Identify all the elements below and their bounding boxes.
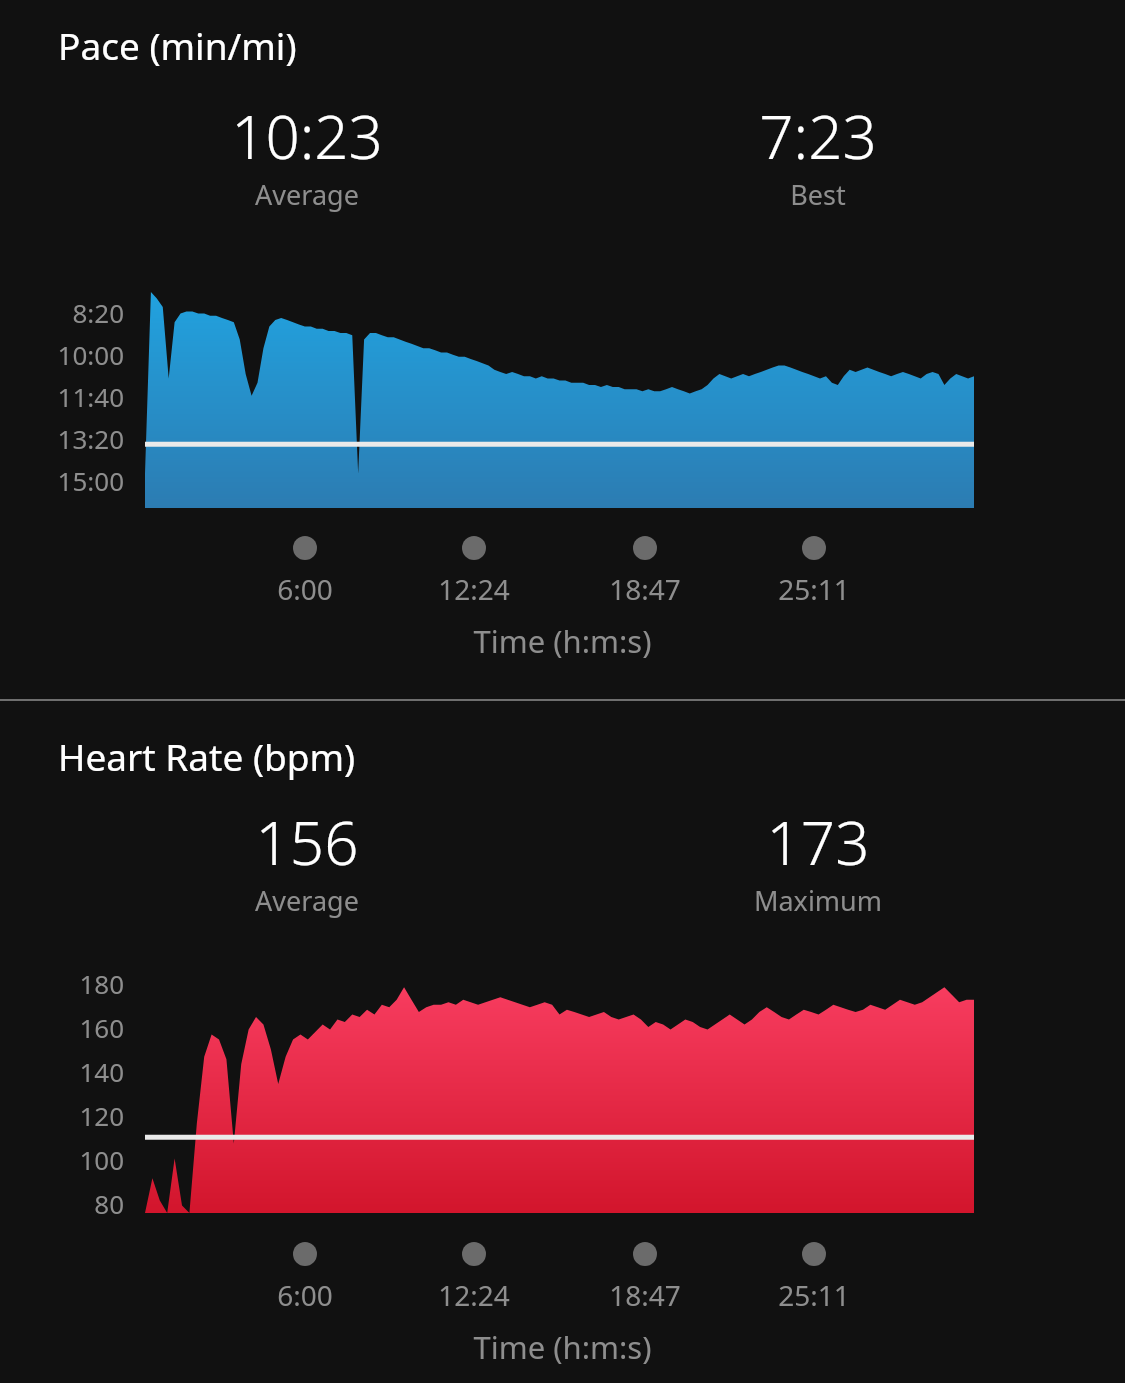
staticText: 15:00 [0, 463, 124, 498]
staticText: 100 [0, 1142, 124, 1177]
staticText: 120 [0, 1098, 124, 1133]
staticText: 12:24 [374, 1276, 574, 1314]
button[interactable]: Heart Rate (bpm) [0, 701, 1125, 1383]
staticText: 25:11 [714, 570, 914, 608]
staticText: 6:00 [205, 570, 405, 608]
staticText: 11:40 [0, 379, 124, 414]
staticText: 140 [0, 1054, 124, 1089]
staticText: 18:47 [545, 1276, 745, 1314]
staticText: Pace (min/mi) [58, 20, 297, 70]
staticText: 13:20 [0, 421, 124, 456]
staticText: 10:00 [0, 337, 124, 372]
staticText: 7:23 [628, 95, 1008, 177]
staticText: 173 [628, 801, 1008, 883]
staticText: 8:20 [0, 295, 124, 330]
staticText: Time (h:m:s) [0, 620, 1125, 662]
staticText: 25:11 [714, 1276, 914, 1314]
staticText: 18:47 [545, 570, 745, 608]
staticText: Average [117, 176, 497, 213]
staticText: 156 [117, 801, 497, 883]
staticText: 180 [0, 966, 124, 1001]
staticText: 80 [0, 1186, 124, 1221]
staticText: Best [628, 176, 1008, 213]
staticText: Maximum [628, 882, 1008, 919]
staticText: 10:23 [117, 95, 497, 177]
staticText: 160 [0, 1010, 124, 1045]
staticText: Time (h:m:s) [0, 1326, 1125, 1368]
staticText: 12:24 [374, 570, 574, 608]
staticText: Average [117, 882, 497, 919]
staticText: Heart Rate (bpm) [58, 731, 356, 781]
button[interactable]: Pace (min/mi) [0, 0, 1125, 700]
staticText: 6:00 [205, 1276, 405, 1314]
